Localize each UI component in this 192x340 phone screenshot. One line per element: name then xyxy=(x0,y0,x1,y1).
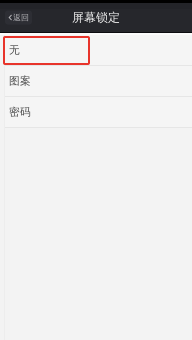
staticText: 无 xyxy=(9,43,20,56)
button[interactable]: 图案 xyxy=(5,66,192,96)
button[interactable]: 返回 xyxy=(5,10,32,24)
staticText: 图案 xyxy=(9,74,31,87)
button[interactable]: 密码 xyxy=(5,97,192,127)
staticText: 屏幕锁定 xyxy=(72,10,120,25)
staticText: 密码 xyxy=(9,105,31,118)
button[interactable]: 无 xyxy=(5,35,192,65)
staticText: 返回 xyxy=(13,13,29,22)
